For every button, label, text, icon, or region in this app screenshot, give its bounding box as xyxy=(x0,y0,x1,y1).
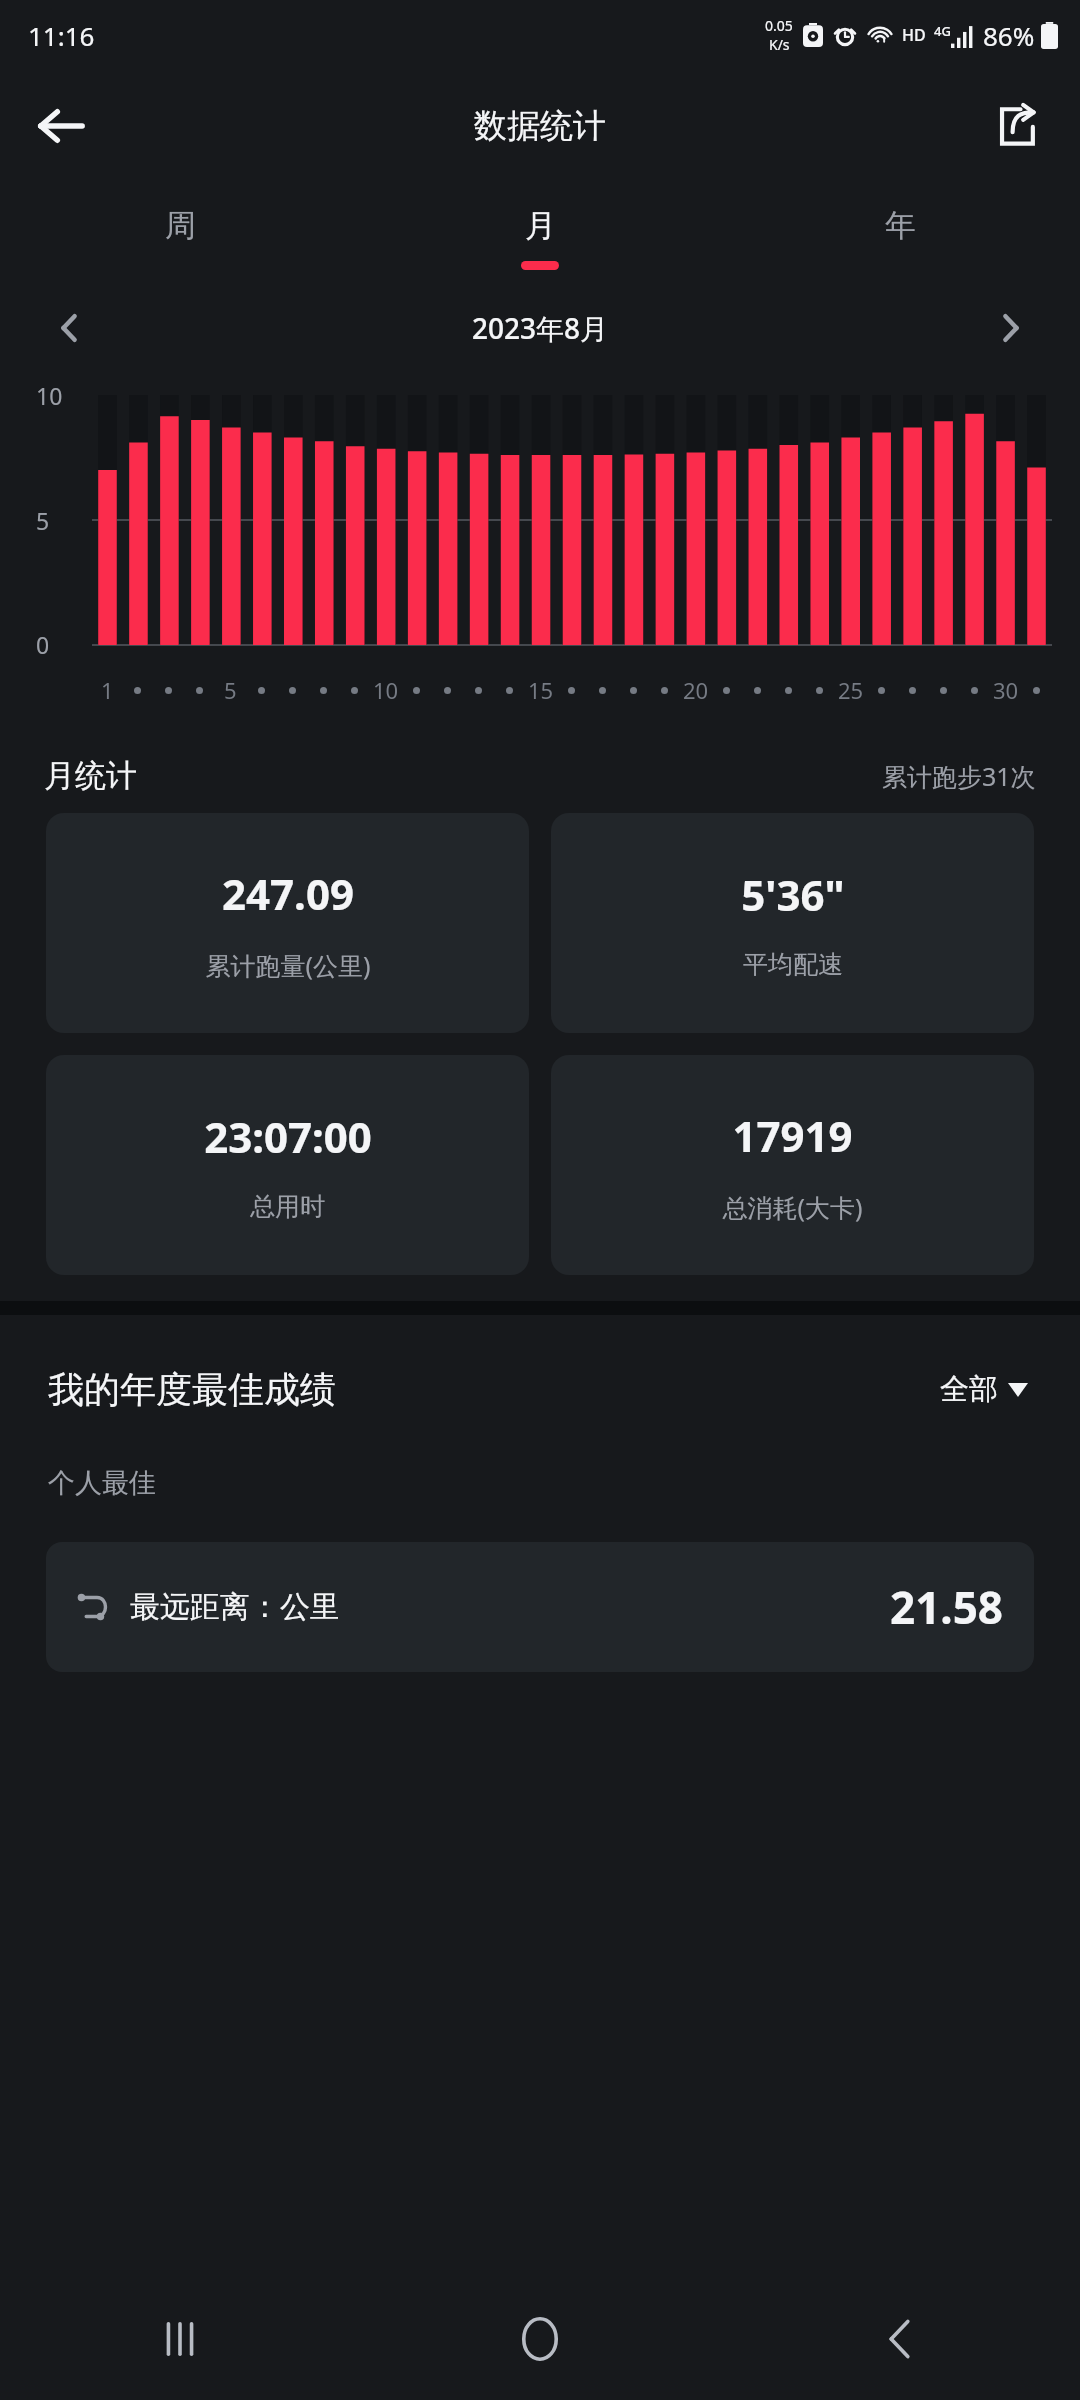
staticText: 15 xyxy=(528,675,554,705)
staticText: 86% xyxy=(983,18,1035,53)
staticText: 月统计 xyxy=(44,756,137,795)
staticText: 月 xyxy=(525,206,556,245)
staticText: 数据统计 xyxy=(474,105,606,147)
staticText: 1 xyxy=(101,675,114,705)
staticText: HD xyxy=(902,24,926,46)
button[interactable]: 月 xyxy=(360,182,720,286)
staticText: 平均配速 xyxy=(743,949,843,980)
staticText: 0 xyxy=(36,629,50,660)
staticText: 30 xyxy=(993,675,1019,705)
staticText: 总消耗(大卡) xyxy=(722,1190,863,1224)
staticText: 247.09 xyxy=(222,865,354,922)
button[interactable]: 最远距离：公里 xyxy=(46,1542,1034,1672)
button[interactable]: 23:07:00 xyxy=(46,1055,529,1275)
button[interactable]: 周 xyxy=(0,182,360,286)
staticText: 个人最佳 xyxy=(48,1466,156,1500)
staticText: 4G xyxy=(934,22,951,40)
button[interactable]: 全部 xyxy=(936,1367,1032,1412)
staticText: 最远距离：公里 xyxy=(130,1588,340,1626)
staticText: 累计跑量(公里) xyxy=(205,948,371,982)
staticText: 20 xyxy=(683,675,709,705)
staticText: 周 xyxy=(165,206,196,245)
staticText: 2023年8月 xyxy=(472,309,609,347)
staticText: 10 xyxy=(36,380,63,411)
staticText: 25 xyxy=(838,675,864,705)
button[interactable]: 年 xyxy=(720,182,1080,286)
button[interactable]: Home xyxy=(360,2278,720,2400)
button[interactable]: Share xyxy=(982,91,1052,161)
staticText: 5 xyxy=(224,675,237,705)
staticText: 17919 xyxy=(732,1107,853,1164)
button[interactable]: 247.09 xyxy=(46,813,529,1033)
button[interactable]: Back xyxy=(720,2278,1080,2400)
button[interactable]: 17919 xyxy=(551,1055,1034,1275)
staticText: 总用时 xyxy=(250,1191,325,1222)
staticText: K/s xyxy=(769,35,790,54)
staticText: 5 xyxy=(36,505,50,536)
button[interactable]: 5'36" xyxy=(551,813,1034,1033)
staticText: 21.58 xyxy=(890,1577,1004,1637)
button[interactable]: Back xyxy=(22,87,100,165)
staticText: 11:16 xyxy=(28,18,95,53)
button[interactable]: Next month xyxy=(982,299,1040,357)
staticText: 全部 xyxy=(940,1371,998,1408)
button[interactable]: Previous month xyxy=(40,299,98,357)
staticText: 0.05 xyxy=(765,16,793,35)
staticText: 5'36" xyxy=(741,866,845,923)
staticText: 10 xyxy=(373,675,399,705)
button[interactable]: Recents xyxy=(0,2278,360,2400)
staticText: 年 xyxy=(885,206,916,245)
staticText: 23:07:00 xyxy=(204,1108,372,1165)
staticText: 我的年度最佳成绩 xyxy=(48,1367,336,1412)
staticText: 累计跑步31次 xyxy=(882,759,1036,793)
